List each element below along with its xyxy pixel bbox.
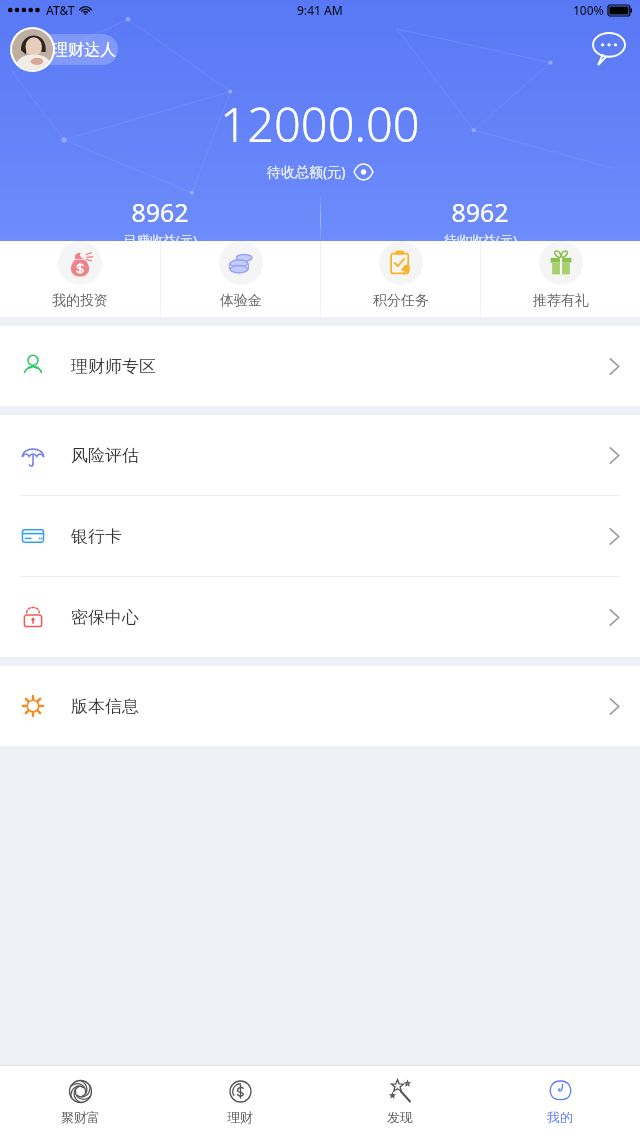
staticText: 9:41 AM: [297, 2, 343, 18]
button[interactable]: 我的投资: [0, 241, 160, 310]
button[interactable]: Messages: [588, 28, 630, 70]
staticText: 已赚收益(元): [124, 231, 197, 241]
staticText: 理财: [227, 1109, 253, 1125]
button[interactable]: 理财师专区: [0, 326, 640, 406]
button[interactable]: 理财达人: [10, 27, 96, 72]
button[interactable]: 我的: [480, 1078, 640, 1125]
staticText: 推荐有礼: [533, 292, 589, 310]
staticText: 版本信息: [71, 696, 139, 717]
staticText: 理财达人: [52, 40, 116, 60]
staticText: 8962: [131, 195, 189, 229]
staticText: 风险评估: [71, 445, 139, 466]
button[interactable]: 密保中心: [0, 577, 640, 657]
staticText: AT&T: [46, 2, 75, 18]
staticText: 发现: [387, 1109, 413, 1125]
staticText: 8962: [451, 195, 509, 229]
staticText: 待收收益(元): [444, 231, 517, 241]
staticText: 聚财富: [61, 1109, 100, 1125]
button[interactable]: 发现: [320, 1078, 480, 1125]
staticText: 密保中心: [71, 607, 139, 628]
staticText: 待收总额(元): [267, 162, 346, 181]
button[interactable]: 积分任务: [321, 241, 480, 310]
button[interactable]: 银行卡: [0, 496, 640, 577]
staticText: 体验金: [220, 292, 262, 310]
staticText: 我的: [547, 1109, 573, 1125]
staticText: 12000.00: [220, 92, 420, 156]
button[interactable]: 聚财富: [0, 1078, 160, 1125]
staticText: 银行卡: [71, 526, 122, 547]
staticText: 理财师专区: [71, 356, 156, 377]
button[interactable]: 理财: [160, 1078, 320, 1125]
staticText: 100%: [573, 2, 604, 18]
button[interactable]: 风险评估: [0, 415, 640, 496]
button[interactable]: 推荐有礼: [481, 241, 640, 310]
staticText: 我的投资: [52, 292, 108, 310]
button[interactable]: 体验金: [161, 241, 320, 310]
button[interactable]: 待收总额(元): [267, 162, 373, 181]
button[interactable]: 版本信息: [0, 666, 640, 746]
button[interactable]: 8962: [0, 195, 320, 241]
staticText: 积分任务: [373, 292, 429, 310]
button[interactable]: 8962: [320, 195, 640, 241]
